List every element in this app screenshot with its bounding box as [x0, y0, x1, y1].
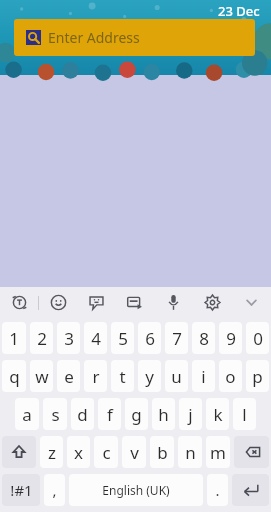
staticText: z	[48, 441, 56, 464]
staticText: g	[131, 403, 142, 426]
staticText: .	[215, 480, 220, 500]
staticText: 3	[64, 327, 74, 350]
staticText: h	[158, 403, 169, 426]
staticText: k	[213, 403, 223, 426]
staticText: r	[92, 365, 100, 388]
button[interactable]: 2	[30, 322, 53, 354]
button[interactable]: 9	[219, 322, 242, 354]
button[interactable]: Shift	[2, 436, 36, 468]
button[interactable]: s	[43, 398, 67, 430]
button[interactable]: n	[178, 436, 202, 468]
staticText: p	[252, 365, 263, 388]
staticText: 23 Dec	[218, 2, 260, 20]
button[interactable]: 3	[57, 322, 80, 354]
button[interactable]: Text mode	[0, 288, 38, 317]
button[interactable]: 4	[84, 322, 107, 354]
staticText: 4	[91, 327, 101, 350]
button[interactable]: 0	[246, 322, 269, 354]
staticText: e	[64, 365, 74, 388]
staticText: n	[185, 441, 196, 464]
button[interactable]: .	[207, 474, 228, 506]
button[interactable]: m	[206, 436, 230, 468]
staticText: w	[35, 365, 49, 388]
button[interactable]: h	[152, 398, 175, 430]
button[interactable]: j	[179, 398, 202, 430]
staticText: b	[157, 441, 168, 464]
button[interactable]: 5	[111, 322, 134, 354]
button[interactable]: o	[219, 360, 242, 392]
staticText: i	[201, 365, 206, 388]
staticText: 9	[226, 327, 236, 350]
button[interactable]: 6	[138, 322, 161, 354]
button[interactable]: Enter Address	[14, 19, 255, 56]
staticText: l	[242, 403, 247, 426]
button[interactable]: p	[246, 360, 269, 392]
button[interactable]: d	[71, 398, 94, 430]
staticText: u	[171, 365, 182, 388]
button[interactable]: Stickers	[77, 288, 115, 317]
button[interactable]: Emoji	[39, 288, 77, 317]
staticText: v	[130, 441, 139, 464]
button[interactable]: a	[15, 398, 39, 430]
staticText: 6	[145, 327, 155, 350]
button[interactable]: Hide keyboard	[232, 288, 271, 317]
button[interactable]: GIF	[115, 288, 154, 317]
staticText: ,	[52, 480, 57, 500]
button[interactable]: Enter	[232, 474, 269, 506]
staticText: 7	[172, 327, 182, 350]
staticText: y	[145, 365, 154, 388]
button[interactable]: w	[30, 360, 53, 392]
button[interactable]: 1	[2, 322, 26, 354]
button[interactable]: t	[111, 360, 134, 392]
button[interactable]: l	[233, 398, 256, 430]
staticText: !#1	[10, 480, 33, 500]
button[interactable]: k	[206, 398, 229, 430]
button[interactable]: y	[138, 360, 161, 392]
staticText: j	[188, 403, 193, 426]
staticText: 0	[253, 327, 263, 350]
button[interactable]: e	[57, 360, 80, 392]
button[interactable]: 7	[165, 322, 188, 354]
button[interactable]: b	[150, 436, 174, 468]
staticText: q	[9, 365, 20, 388]
button[interactable]: f	[98, 398, 121, 430]
staticText: m	[210, 441, 226, 464]
button[interactable]: z	[40, 436, 63, 468]
staticText: a	[22, 403, 32, 426]
button[interactable]: q	[2, 360, 26, 392]
staticText: o	[225, 365, 236, 388]
staticText: 8	[199, 327, 209, 350]
staticText: 5	[118, 327, 128, 350]
button[interactable]: u	[165, 360, 188, 392]
button[interactable]: x	[67, 436, 90, 468]
staticText: English (UK)	[102, 482, 170, 498]
button[interactable]: ,	[44, 474, 65, 506]
button[interactable]: v	[122, 436, 146, 468]
button[interactable]: c	[94, 436, 118, 468]
staticText: d	[77, 403, 88, 426]
staticText: 2	[37, 327, 47, 350]
button[interactable]: r	[84, 360, 107, 392]
staticText: t	[119, 365, 126, 388]
staticText: c	[102, 441, 111, 464]
staticText: 1	[9, 327, 19, 350]
button[interactable]: English (UK)	[69, 474, 203, 506]
button[interactable]: Settings	[193, 288, 232, 317]
button[interactable]: Backspace	[234, 436, 269, 468]
staticText: s	[51, 403, 60, 426]
button[interactable]: !#1	[2, 474, 40, 506]
staticText: x	[74, 441, 83, 464]
button[interactable]: g	[125, 398, 148, 430]
button[interactable]: Voice input	[154, 288, 193, 317]
staticText: f	[107, 403, 113, 426]
staticText: Enter Address	[48, 28, 140, 47]
button[interactable]: 8	[192, 322, 215, 354]
button[interactable]: i	[192, 360, 215, 392]
